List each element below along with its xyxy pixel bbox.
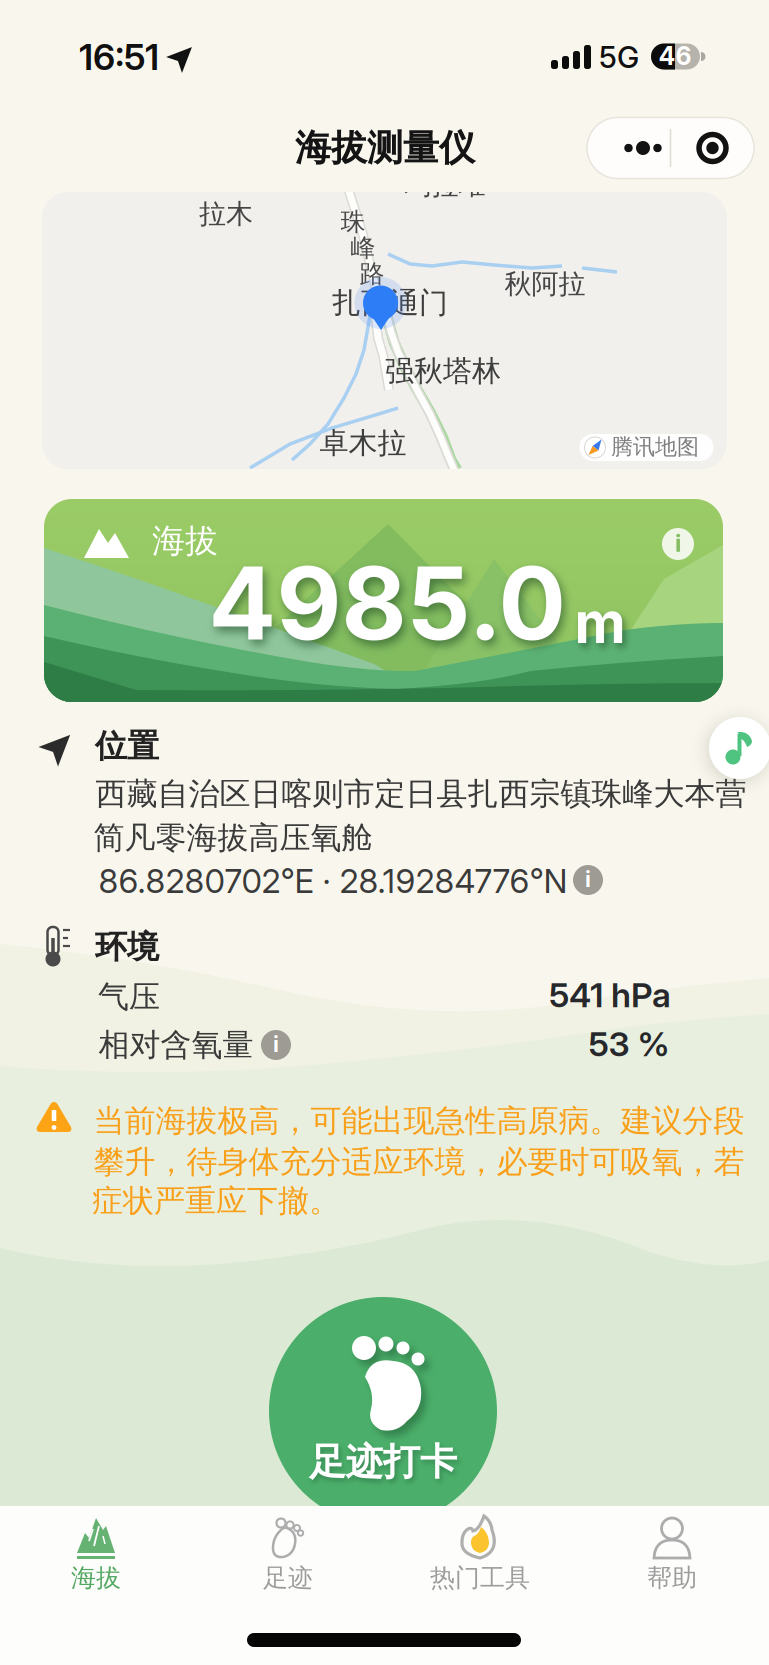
staticText: 53 % — [588, 1023, 669, 1064]
button[interactable]: Music — [709, 717, 769, 779]
staticText: 16:51 — [79, 35, 159, 79]
button[interactable]: 帮助 — [591, 1500, 753, 1630]
staticText: 症状严重应下撤。 — [92, 1181, 340, 1221]
staticText: 扎西通门 — [332, 285, 448, 321]
staticText: 86.8280702°E · 28.19284776°N — [98, 861, 567, 901]
button[interactable]: Oxygen info — [261, 1030, 291, 1060]
staticText: 攀升，待身体充分适应环境，必要时可吸氧，若 — [93, 1142, 744, 1182]
staticText: i — [273, 1031, 279, 1057]
staticText: m — [574, 589, 625, 657]
staticText: 海拔 — [71, 1562, 121, 1594]
button[interactable]: Map — [42, 192, 727, 469]
button[interactable]: Coordinates info — [573, 865, 603, 895]
staticText: 腾讯地图 — [611, 433, 699, 461]
button[interactable]: Altitude info — [662, 528, 694, 560]
staticText: 环境 — [95, 927, 159, 967]
staticText: 拉木 — [199, 197, 253, 231]
staticText: 气压 — [98, 977, 160, 1017]
staticText: 4985.0 — [208, 542, 565, 663]
staticText: i — [675, 528, 681, 557]
staticText: 西藏自治区日喀则市定日县扎西宗镇珠峰大本营 — [95, 774, 746, 814]
button[interactable]: Close — [671, 117, 754, 178]
staticText: 足迹 — [263, 1562, 313, 1594]
staticText: 海拔 — [152, 520, 218, 562]
staticText: 珠 — [340, 206, 365, 238]
staticText: 秋阿拉 — [504, 267, 585, 301]
staticText: 峰 — [350, 232, 375, 264]
button[interactable]: 足迹打卡 — [269, 1297, 497, 1525]
staticText: 当前海拔极高，可能出现急性高原病。建议分段 — [93, 1101, 744, 1141]
staticText: 路 — [359, 258, 384, 290]
staticText: 简凡零海拔高压氧舱 — [93, 818, 372, 858]
staticText: 46 — [658, 41, 691, 71]
staticText: 足迹打卡 — [309, 1439, 457, 1485]
staticText: 卓木拉 — [319, 425, 406, 461]
staticText: 帮助 — [647, 1562, 697, 1594]
staticText: 541 hPa — [549, 974, 671, 1015]
staticText: i — [585, 866, 591, 892]
staticText: 5G — [599, 39, 639, 75]
button[interactable]: More — [587, 117, 670, 178]
button[interactable]: Altitude card — [44, 499, 723, 702]
staticText: 位置 — [95, 726, 159, 766]
staticText: 均拉堆 — [404, 168, 485, 202]
button[interactable]: 热门工具 — [399, 1500, 561, 1630]
staticText: 海拔测量仪 — [295, 125, 475, 171]
button[interactable]: 足迹 — [207, 1500, 369, 1630]
staticText: 热门工具 — [430, 1562, 530, 1594]
staticText: 强秋塔林 — [385, 353, 501, 389]
button[interactable]: 海拔 — [15, 1500, 177, 1630]
staticText: 相对含氧量 — [98, 1025, 253, 1065]
